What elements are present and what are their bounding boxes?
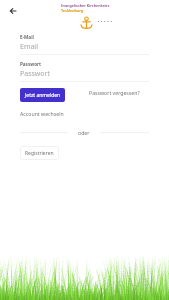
staticText: Tecklenburg [61, 8, 84, 13]
staticText: Email [20, 42, 38, 52]
button[interactable]: Jetzt anmelden [20, 88, 65, 102]
staticText: Passwort vergessen? [89, 89, 140, 96]
staticText: Registrieren [25, 150, 54, 157]
staticText: Passwort [20, 61, 42, 67]
button[interactable]: Account wechseln [20, 108, 64, 118]
staticText: oder [78, 129, 90, 136]
button[interactable]: Passwort vergessen? [89, 86, 140, 99]
button[interactable]: Registrieren [20, 146, 59, 160]
staticText: Passwort [20, 69, 51, 79]
button[interactable]: Back [2, 0, 24, 22]
staticText: E-Mail [20, 34, 34, 40]
staticText: Account wechseln [20, 110, 64, 117]
staticText: Evangelischer Kirchenkreis [61, 3, 110, 8]
staticText: Jetzt anmelden [25, 92, 61, 99]
